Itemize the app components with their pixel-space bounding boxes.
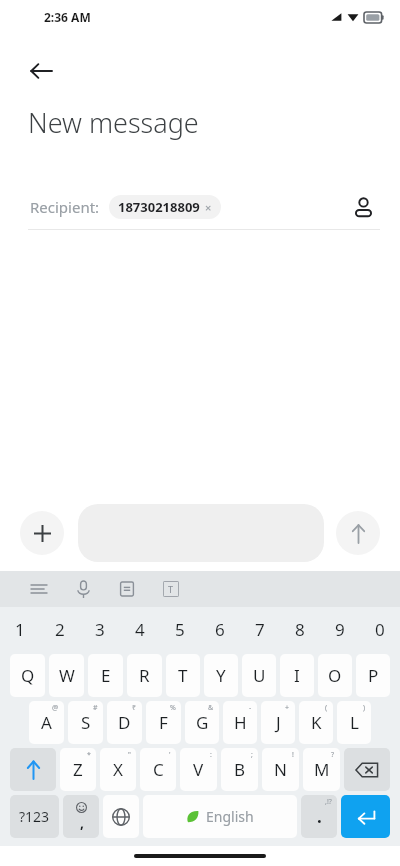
staticText: X	[113, 758, 123, 781]
staticText: #	[93, 703, 98, 713]
button[interactable]: Menu	[22, 572, 56, 606]
button[interactable]: 4	[120, 607, 160, 652]
staticText: V	[193, 758, 204, 781]
button[interactable]: Attach	[20, 511, 64, 555]
button[interactable]: 18730218809	[118, 198, 212, 216]
staticText: 6	[215, 618, 225, 641]
staticText: W	[59, 664, 75, 687]
button[interactable]: A	[29, 701, 64, 744]
staticText: 0	[375, 618, 385, 641]
staticText: @	[52, 703, 59, 713]
staticText: (	[325, 703, 328, 713]
staticText: Q	[21, 664, 35, 687]
staticText: 3	[95, 618, 105, 641]
staticText: 2:36 AM	[44, 9, 91, 25]
staticText: 9	[335, 618, 345, 641]
button[interactable]: Q	[10, 654, 45, 697]
button[interactable]: .	[301, 795, 337, 838]
button[interactable]: F	[146, 701, 181, 744]
staticText: 8	[295, 618, 305, 641]
button[interactable]: I	[280, 654, 314, 697]
button[interactable]: 7	[240, 607, 280, 652]
staticText: %	[170, 703, 176, 713]
staticText: K	[311, 711, 322, 734]
button[interactable]: K	[299, 701, 333, 744]
button[interactable]	[103, 795, 139, 838]
button[interactable]: X	[100, 748, 136, 791]
button[interactable]: Send	[336, 511, 380, 555]
button[interactable]: W	[49, 654, 84, 697]
button[interactable]: O	[318, 654, 352, 697]
button[interactable]: 3	[80, 607, 120, 652]
staticText: A	[41, 711, 52, 734]
button[interactable]: T	[166, 654, 200, 697]
staticText: S	[81, 711, 91, 734]
staticText: 4	[135, 618, 145, 641]
button[interactable]: L	[337, 701, 371, 744]
button[interactable]: M	[303, 748, 340, 791]
staticText: -	[249, 703, 252, 713]
button[interactable]: G	[185, 701, 219, 744]
staticText: B	[234, 758, 246, 781]
button[interactable]: 8	[280, 607, 320, 652]
button[interactable]: N	[262, 748, 299, 791]
button[interactable]: Z	[60, 748, 96, 791]
staticText: !	[292, 750, 294, 760]
button[interactable]: English	[143, 795, 297, 838]
staticText: 1	[15, 618, 25, 641]
button[interactable]: H	[223, 701, 257, 744]
staticText: 7	[255, 618, 265, 641]
staticText: ?123	[19, 807, 50, 826]
button[interactable]: Text style	[154, 572, 188, 606]
button[interactable]	[344, 748, 390, 791]
button[interactable]: Y	[204, 654, 238, 697]
staticText: I	[294, 664, 300, 687]
button[interactable]: Clipboard	[110, 572, 144, 606]
staticText: :	[210, 750, 212, 760]
staticText: M	[314, 758, 330, 781]
button[interactable]: ,	[63, 795, 99, 838]
staticText: ₹	[132, 703, 137, 713]
staticText: U	[253, 664, 266, 687]
staticText: ;	[251, 750, 253, 760]
button[interactable]: Voice input	[66, 572, 100, 606]
button[interactable]: S	[68, 701, 103, 744]
button[interactable]: Back	[22, 52, 60, 90]
button[interactable]: D	[107, 701, 142, 744]
button[interactable]: 6	[200, 607, 240, 652]
staticText: *	[87, 750, 91, 760]
staticText: P	[368, 664, 379, 687]
staticText: C	[153, 758, 164, 781]
button[interactable]: 2	[40, 607, 80, 652]
staticText: ?	[331, 750, 335, 760]
button[interactable]: P	[356, 654, 390, 697]
button[interactable]	[341, 795, 390, 838]
button[interactable]: 5	[160, 607, 200, 652]
staticText: ,!?	[325, 797, 332, 807]
button[interactable]: 0	[360, 607, 400, 652]
staticText: )	[363, 703, 366, 713]
staticText: H	[234, 711, 247, 734]
button[interactable]: C	[140, 748, 176, 791]
button[interactable]	[10, 748, 56, 791]
staticText: Y	[216, 664, 226, 687]
staticText: F	[159, 711, 168, 734]
staticText: "	[128, 750, 131, 760]
button[interactable]: Contacts	[344, 188, 382, 226]
staticText: D	[118, 711, 131, 734]
button[interactable]: B	[221, 748, 258, 791]
staticText: G	[196, 711, 209, 734]
button[interactable]: 9	[320, 607, 360, 652]
staticText: Recipient:	[30, 197, 100, 217]
staticText: Z	[73, 758, 83, 781]
button[interactable]: J	[261, 701, 295, 744]
button[interactable]: V	[180, 748, 217, 791]
button[interactable]: U	[242, 654, 276, 697]
button[interactable]: ?123	[10, 795, 59, 838]
button[interactable]: R	[127, 654, 162, 697]
button[interactable]: E	[88, 654, 123, 697]
button[interactable]: 1	[0, 607, 40, 652]
staticText: N	[274, 758, 287, 781]
staticText: ,	[80, 813, 84, 832]
